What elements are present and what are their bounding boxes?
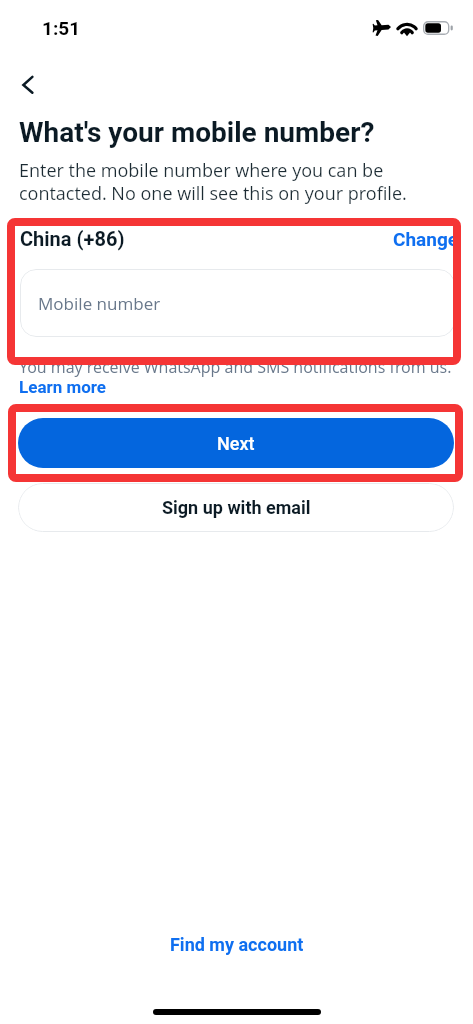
- staticText: Next: [217, 433, 255, 454]
- staticText: What's your mobile number?: [19, 116, 375, 149]
- button[interactable]: Learn more: [19, 377, 107, 397]
- button[interactable]: Find my account: [170, 934, 304, 955]
- button[interactable]: Back: [11, 68, 44, 101]
- staticText: 1:51: [42, 17, 81, 39]
- staticText: Enter the mobile number where you can be…: [19, 158, 407, 205]
- button[interactable]: China (+86): [20, 227, 125, 250]
- button[interactable]: Sign up with email: [18, 483, 454, 532]
- staticText: Mobile number: [38, 292, 161, 315]
- button[interactable]: Change: [393, 228, 459, 250]
- button[interactable]: Next: [18, 418, 454, 468]
- staticText: You may receive WhatsApp and SMS notific…: [19, 356, 452, 378]
- button[interactable]: Mobile number: [20, 269, 455, 337]
- staticText: Sign up with email: [162, 497, 311, 518]
